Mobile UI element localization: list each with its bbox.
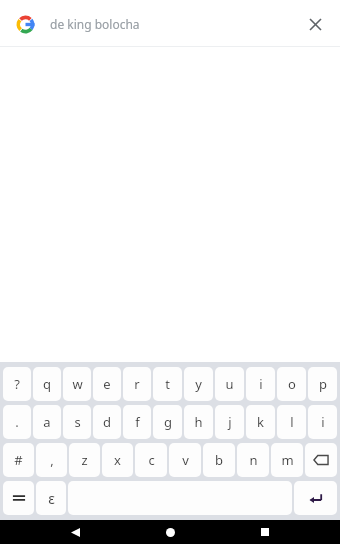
button[interactable]: # [3, 443, 34, 477]
staticText: i [259, 375, 263, 393]
staticText: o [288, 375, 296, 393]
button[interactable]: i [246, 367, 275, 401]
staticText: de king bolocha [50, 16, 140, 32]
button[interactable]: Home [150, 520, 190, 544]
button[interactable]: Recents [245, 520, 285, 544]
staticText: u [225, 375, 234, 393]
staticText: l [290, 413, 294, 431]
staticText: w [72, 375, 83, 393]
button[interactable]: p [308, 367, 337, 401]
button[interactable]: Back [55, 520, 95, 544]
staticText: q [43, 375, 51, 393]
staticText: m [281, 451, 294, 469]
button[interactable]: . [3, 405, 31, 439]
staticText: . [15, 413, 19, 431]
staticText: v [182, 451, 189, 469]
staticText: , [50, 451, 54, 469]
button[interactable]: v [169, 443, 201, 477]
button[interactable]: j [215, 405, 244, 439]
button[interactable]: l [277, 405, 306, 439]
button[interactable]: e [93, 367, 121, 401]
button[interactable]: Enter [294, 481, 337, 515]
staticText: ? [14, 375, 20, 393]
staticText: s [74, 413, 81, 431]
button[interactable]: de king bolocha [50, 0, 300, 47]
button[interactable]: y [184, 367, 213, 401]
staticText: n [249, 451, 258, 469]
staticText: h [194, 413, 203, 431]
button[interactable]: d [93, 405, 121, 439]
staticText: y [195, 375, 202, 393]
button[interactable]: t [153, 367, 182, 401]
button[interactable]: Switch keyboard [3, 481, 34, 515]
button[interactable]: ε [36, 481, 66, 515]
button[interactable]: w [63, 367, 91, 401]
staticText: t [165, 375, 170, 393]
staticText: k [257, 413, 264, 431]
staticText: ε [48, 489, 55, 508]
staticText: e [103, 375, 111, 393]
staticText: a [43, 413, 51, 431]
button[interactable]: i [308, 405, 337, 439]
staticText: r [134, 375, 140, 393]
button[interactable]: b [203, 443, 235, 477]
button[interactable]: Google [10, 9, 40, 39]
staticText: g [164, 413, 172, 431]
button[interactable]: m [271, 443, 303, 477]
staticText: # [14, 451, 23, 469]
staticText: d [103, 413, 111, 431]
button[interactable]: h [184, 405, 213, 439]
staticText: i [321, 413, 325, 431]
button[interactable]: Space [67, 479, 293, 517]
staticText: c [148, 451, 155, 469]
button[interactable]: n [237, 443, 269, 477]
button[interactable]: o [277, 367, 306, 401]
button[interactable]: a [33, 405, 61, 439]
staticText: f [135, 413, 140, 431]
button[interactable]: r [123, 367, 151, 401]
button[interactable]: Clear [300, 9, 330, 39]
button[interactable]: k [246, 405, 275, 439]
button[interactable]: u [215, 367, 244, 401]
button[interactable]: g [153, 405, 182, 439]
staticText: j [228, 413, 232, 431]
staticText: z [81, 451, 88, 469]
button[interactable]: q [33, 367, 61, 401]
button[interactable]: c [135, 443, 167, 477]
staticText: b [215, 451, 223, 469]
button[interactable]: ? [3, 367, 31, 401]
button[interactable]: , [36, 443, 67, 477]
button[interactable]: f [123, 405, 151, 439]
button[interactable]: Backspace [305, 443, 337, 477]
staticText: p [319, 375, 327, 393]
button[interactable]: z [69, 443, 100, 477]
button[interactable]: s [63, 405, 91, 439]
staticText: x [114, 451, 121, 469]
button[interactable]: x [102, 443, 133, 477]
